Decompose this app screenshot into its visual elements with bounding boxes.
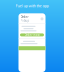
staticText: Fuel up with the app bbox=[15, 3, 48, 8]
staticText: Pickup bbox=[20, 19, 29, 22]
staticText: Order now bbox=[24, 33, 39, 37]
staticText: Order bbox=[20, 15, 28, 19]
